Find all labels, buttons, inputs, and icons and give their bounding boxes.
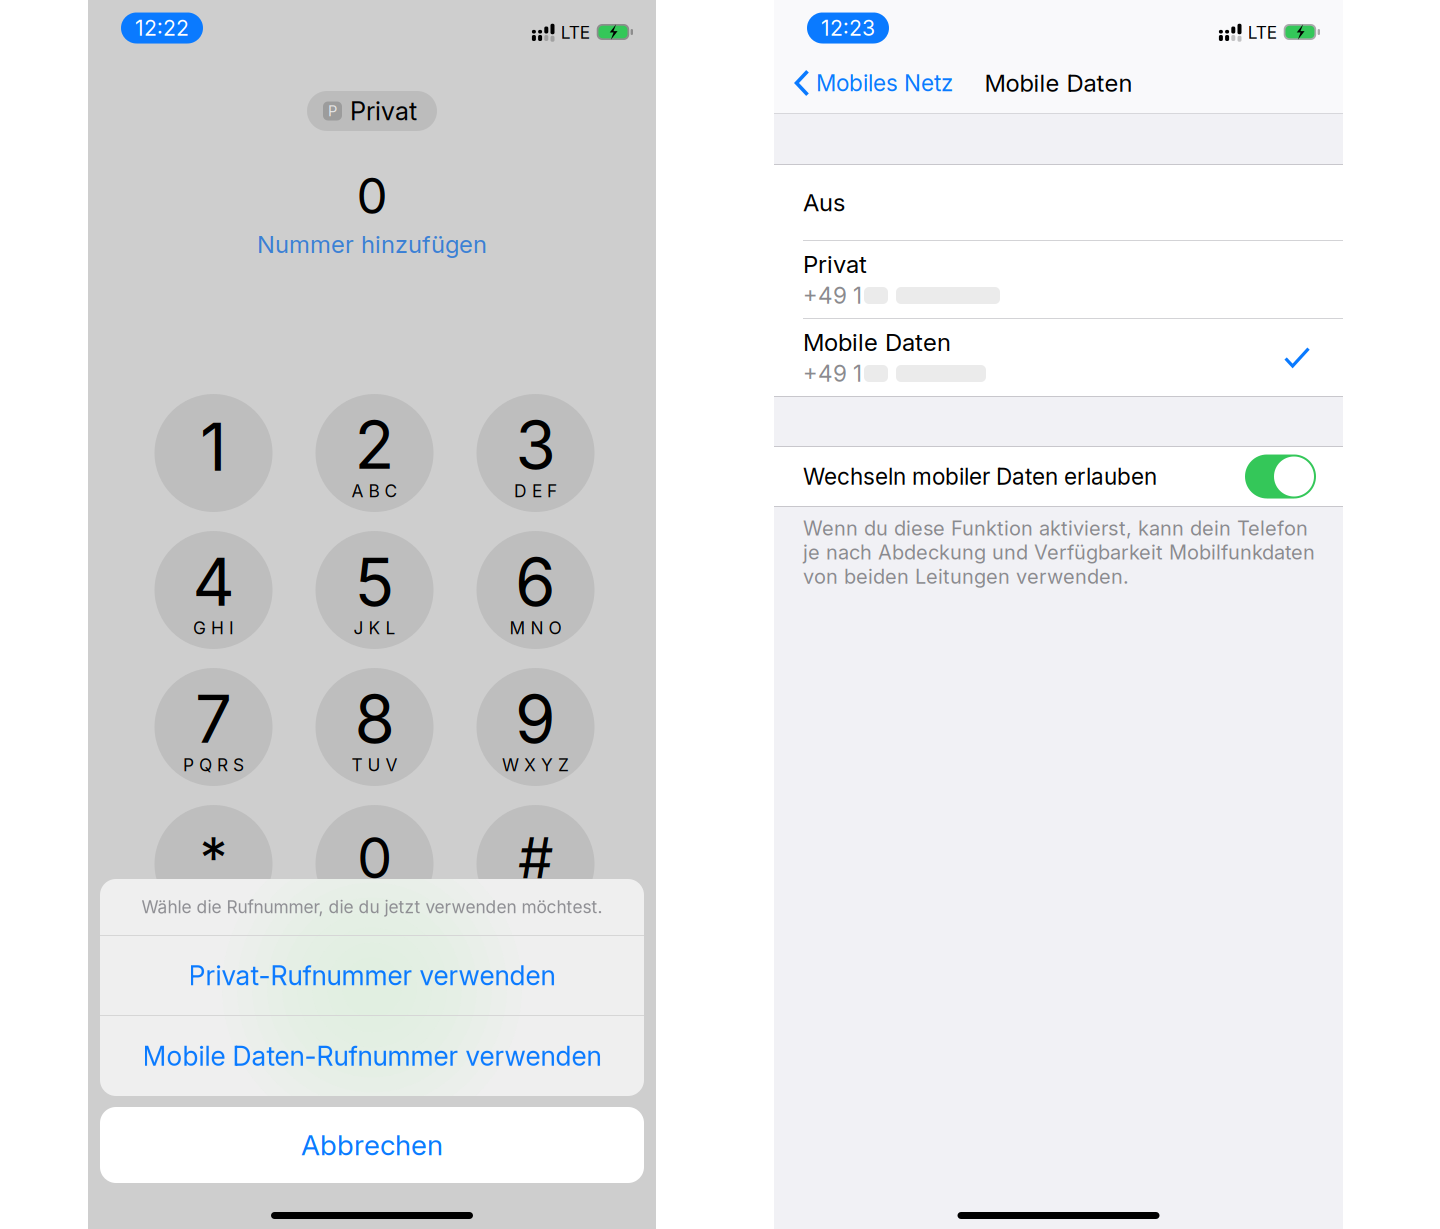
staticText: Mobile Daten — [984, 68, 1132, 97]
staticText: 9 — [515, 679, 556, 758]
staticText: Mobiles Netz — [816, 69, 953, 97]
staticText: Mobile Daten-Rufnummer verwenden — [142, 1040, 601, 1072]
staticText: # — [518, 824, 553, 892]
staticText: 12:22 — [135, 15, 189, 41]
button[interactable]: 2 — [315, 394, 433, 512]
staticText: Privat-Rufnummer verwenden — [188, 959, 555, 992]
staticText: 3 — [515, 405, 555, 484]
button[interactable]: * — [154, 805, 272, 923]
staticText: LTE — [1248, 22, 1277, 43]
staticText: +49 1 — [803, 360, 862, 387]
staticText: T U V — [351, 754, 397, 775]
staticText: 1 — [200, 407, 227, 486]
staticText: M N O — [509, 617, 561, 638]
button[interactable]: 1 — [154, 394, 272, 512]
staticText: G H I — [193, 617, 234, 638]
button[interactable]: 6 — [476, 531, 594, 649]
staticText: Nummer hinzufügen — [257, 230, 487, 259]
staticText: Wechseln mobiler Daten erlauben — [803, 463, 1157, 490]
button[interactable]: Nummer hinzufügen — [247, 226, 497, 263]
button[interactable]: Mobiles Netz — [774, 61, 953, 105]
staticText: A B C — [351, 480, 397, 501]
staticText: LTE — [561, 22, 590, 43]
button[interactable]: 3 — [476, 394, 594, 512]
staticText: 5 — [354, 542, 394, 621]
button[interactable]: 5 — [315, 531, 433, 649]
button[interactable]: Mobile Daten — [774, 319, 1343, 396]
staticText: Aus — [803, 188, 845, 217]
button[interactable]: # — [476, 805, 594, 923]
staticText: +49 1 — [803, 282, 862, 309]
staticText: 7 — [195, 679, 232, 758]
button[interactable]: 8 — [315, 668, 433, 786]
staticText: Privat — [803, 250, 867, 279]
button[interactable]: Privat — [774, 241, 1343, 318]
button[interactable] — [1245, 454, 1316, 498]
staticText: D E F — [514, 480, 557, 501]
button[interactable]: 9 — [476, 668, 594, 786]
staticText: 12:23 — [821, 15, 875, 41]
button[interactable]: Privat-Rufnummer verwenden — [100, 936, 644, 1015]
staticText: Wenn du diese Funktion aktivierst, kann … — [803, 516, 1315, 589]
button[interactable]: Abbrechen — [100, 1107, 644, 1183]
staticText: * — [199, 824, 227, 892]
button[interactable]: 0 — [315, 805, 433, 923]
staticText: 4 — [192, 542, 234, 621]
staticText: 0 — [356, 166, 387, 226]
staticText: J K L — [353, 617, 395, 638]
staticText: Privat — [350, 96, 417, 126]
button[interactable]: 7 — [154, 668, 272, 786]
button[interactable]: Aus — [774, 165, 1343, 240]
staticText: 0 — [357, 824, 392, 892]
staticText: Mobile Daten — [803, 328, 951, 357]
staticText: 2 — [354, 405, 394, 484]
staticText: Abbrechen — [301, 1128, 443, 1162]
staticText: W X Y Z — [502, 754, 569, 775]
button[interactable]: Wähle die Rufnummer, die du jetzt verwen… — [100, 879, 644, 935]
staticText: 8 — [354, 679, 394, 758]
button[interactable]: Mobile Daten-Rufnummer verwenden — [100, 1016, 644, 1096]
staticText: 6 — [515, 542, 556, 621]
staticText: P — [328, 102, 337, 120]
staticText: Wähle die Rufnummer, die du jetzt verwen… — [141, 896, 602, 917]
staticText: P Q R S — [183, 754, 244, 775]
button[interactable]: 4 — [154, 531, 272, 649]
